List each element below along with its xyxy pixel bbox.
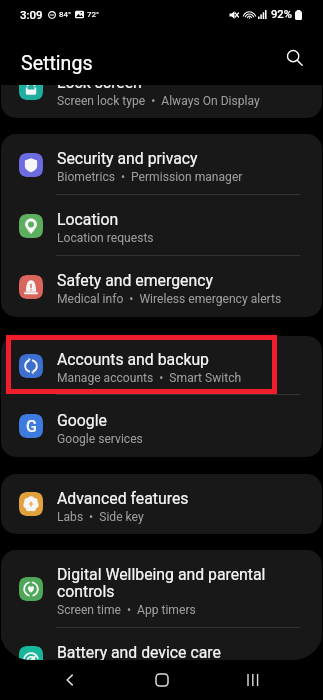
- staticText: Advanced features: [57, 489, 189, 508]
- staticText: 72°: [87, 10, 99, 19]
- button[interactable]: Advanced features: [1, 474, 322, 534]
- staticText: Security and privacy: [57, 149, 198, 168]
- button[interactable]: Security and privacy: [1, 134, 322, 195]
- button[interactable]: Safety and emergency: [1, 256, 322, 317]
- staticText: Digital Wellbeing and parental controls: [57, 565, 266, 601]
- staticText: Accounts and backup: [57, 350, 209, 369]
- staticText: Location requests: [57, 231, 154, 245]
- staticText: Screen lock type • Always On Display: [57, 94, 260, 108]
- button[interactable]: Recent apps: [231, 660, 275, 700]
- staticText: Biometrics • Permission manager: [57, 170, 243, 184]
- staticText: Settings: [21, 52, 93, 75]
- staticText: Lock screen: [57, 85, 142, 92]
- button[interactable]: Search: [279, 42, 309, 72]
- button[interactable]: Digital Wellbeing and parental controls: [1, 550, 322, 628]
- staticText: 84°: [59, 10, 71, 19]
- staticText: Safety and emergency: [57, 271, 213, 290]
- button[interactable]: Lock screen: [1, 85, 322, 118]
- staticText: Location: [57, 210, 119, 229]
- button[interactable]: G: [1, 395, 322, 457]
- staticText: Battery and device care: [57, 643, 221, 660]
- staticText: Medical info • Wireless emergency alerts: [57, 292, 282, 306]
- button[interactable]: Location: [1, 195, 322, 256]
- button[interactable]: Battery and device care: [1, 628, 322, 660]
- button[interactable]: Home: [140, 660, 184, 700]
- staticText: 92%: [271, 8, 292, 21]
- staticText: Google services: [57, 432, 143, 446]
- staticText: Screen time • App timers: [57, 603, 196, 617]
- button[interactable]: Back: [48, 660, 92, 700]
- staticText: Manage accounts • Smart Switch: [57, 371, 242, 385]
- staticText: Labs • Side key: [57, 510, 144, 524]
- staticText: 3:09: [20, 8, 43, 21]
- staticText: Google: [57, 411, 107, 430]
- button[interactable]: Accounts and backup: [1, 336, 322, 395]
- staticText: G: [26, 417, 37, 436]
